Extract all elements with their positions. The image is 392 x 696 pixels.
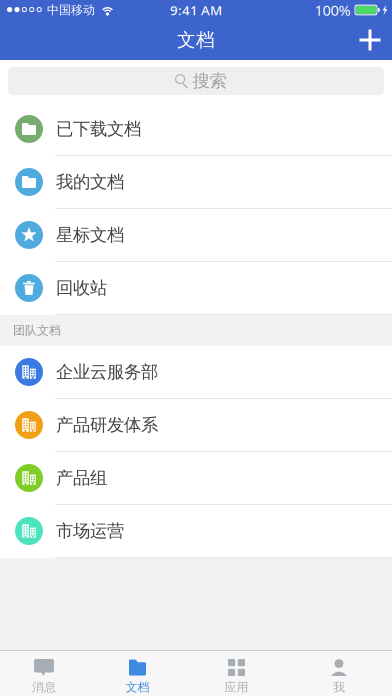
staticText: 我	[333, 680, 345, 695]
staticText: 企业云服务部	[56, 361, 158, 383]
button[interactable]: 搜索	[0, 60, 392, 103]
staticText: 产品组	[56, 467, 107, 489]
staticText: 文档	[177, 28, 215, 51]
button[interactable]: 星标文档	[0, 209, 392, 262]
staticText: 中国移动	[47, 3, 95, 17]
staticText: 100%	[314, 0, 350, 20]
button[interactable]: 已下载文档	[0, 103, 392, 156]
button[interactable]: 我	[286, 651, 392, 696]
button[interactable]: 新建	[348, 20, 392, 60]
staticText: 消息	[32, 680, 56, 695]
staticText: 搜索	[192, 70, 226, 92]
button[interactable]: 回收站	[0, 262, 392, 315]
button[interactable]: 消息	[0, 651, 88, 696]
button[interactable]: 产品组	[0, 452, 392, 505]
button[interactable]: 产品研发体系	[0, 399, 392, 452]
button[interactable]: 应用	[187, 651, 286, 696]
button[interactable]: 企业云服务部	[0, 346, 392, 399]
staticText: 产品研发体系	[56, 414, 158, 436]
staticText: 文档	[125, 680, 149, 695]
button[interactable]: 我的文档	[0, 156, 392, 209]
staticText: 我的文档	[56, 171, 124, 193]
button[interactable]: 文档	[88, 651, 187, 696]
staticText: 回收站	[56, 277, 107, 299]
button[interactable]: 市场运营	[0, 505, 392, 558]
staticText: 应用	[224, 680, 248, 695]
staticText: 团队文档	[13, 323, 61, 338]
staticText: 星标文档	[56, 224, 124, 246]
staticText: 9:41 AM	[170, 1, 222, 19]
staticText: 市场运营	[56, 520, 124, 542]
staticText: 已下载文档	[56, 118, 141, 140]
